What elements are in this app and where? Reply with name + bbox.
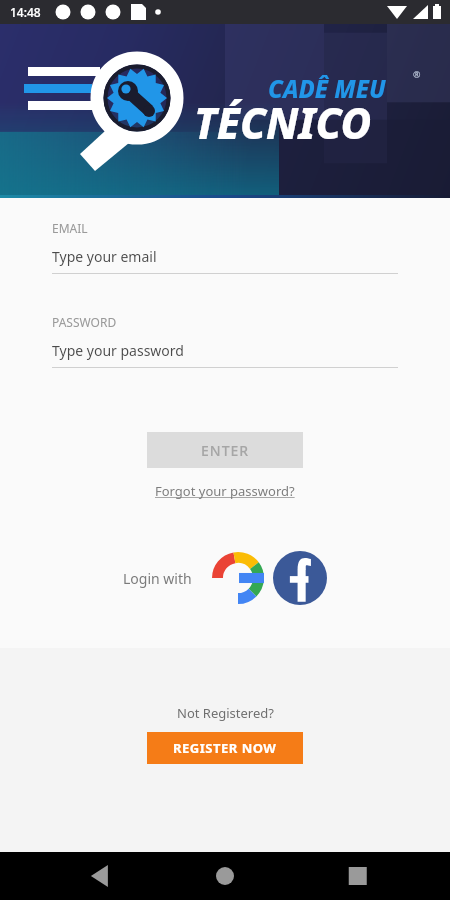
staticText: Login with [123, 569, 192, 588]
button[interactable]: Login with Facebook [272, 550, 328, 606]
staticText: 14:48 [10, 4, 41, 20]
staticText: REGISTER NOW [173, 739, 277, 757]
button[interactable]: ENTER [147, 432, 303, 468]
button[interactable]: REGISTER NOW [147, 732, 303, 764]
staticText: Type your email [52, 247, 157, 266]
staticText: CADÊ MEU [268, 72, 386, 105]
staticText: Forgot your password? [155, 482, 295, 500]
button[interactable]: Forgot your password? [151, 478, 299, 504]
staticText: EMAIL [52, 220, 88, 236]
staticText: TÉCNICO [194, 94, 372, 151]
staticText: ® [413, 68, 421, 80]
staticText: PASSWORD [52, 314, 117, 330]
staticText: Type your password [52, 341, 184, 360]
staticText: ENTER [201, 441, 250, 460]
button[interactable]: Login with Google [210, 550, 266, 606]
staticText: Not Registered? [177, 704, 274, 722]
